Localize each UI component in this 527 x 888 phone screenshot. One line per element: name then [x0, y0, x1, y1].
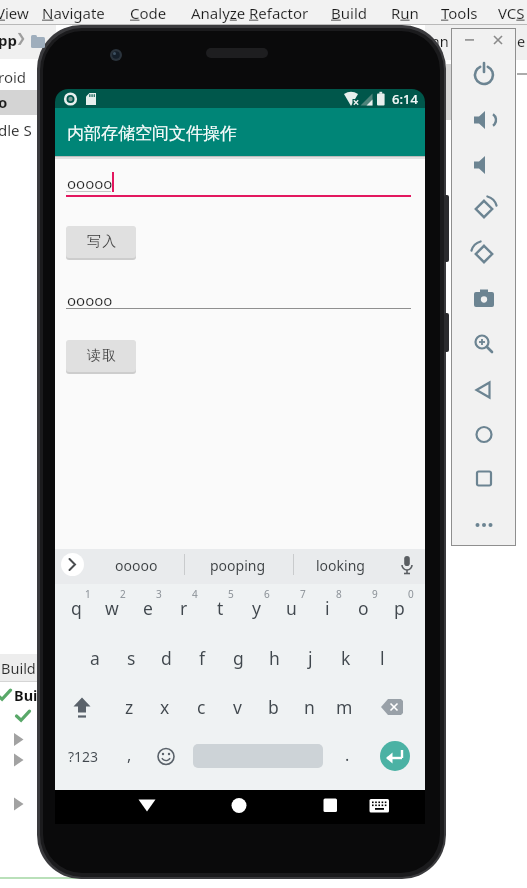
- button[interactable]: t: [130, 592, 310, 624]
- staticText: p: [394, 596, 405, 620]
- staticText: ooooo: [115, 556, 158, 575]
- staticText: Code: [130, 3, 167, 23]
- staticText: 8: [336, 587, 342, 601]
- staticText: s: [127, 646, 136, 670]
- button[interactable]: [469, 463, 499, 493]
- staticText: x: [160, 695, 170, 719]
- button[interactable]: 读取: [66, 340, 136, 372]
- button[interactable]: 写入: [66, 226, 136, 258]
- button[interactable]: Build: [331, 3, 367, 23]
- button[interactable]: q: [0, 592, 166, 624]
- staticText: l: [380, 646, 385, 670]
- staticText: q: [71, 596, 82, 620]
- staticText: t: [217, 596, 224, 620]
- button[interactable]: [489, 31, 507, 49]
- button[interactable]: [314, 790, 346, 823]
- staticText: 1: [85, 587, 91, 601]
- staticText: ooooo: [67, 173, 113, 193]
- button[interactable]: a: [5, 642, 185, 674]
- button[interactable]: Refactor: [249, 3, 309, 23]
- button[interactable]: [223, 790, 255, 823]
- button[interactable]: Tools: [441, 3, 478, 23]
- button[interactable]: ,: [39, 739, 219, 771]
- button[interactable]: p: [309, 592, 489, 624]
- button[interactable]: [363, 790, 395, 823]
- button[interactable]: l: [292, 642, 472, 674]
- button[interactable]: [469, 510, 499, 540]
- button[interactable]: g: [148, 642, 328, 674]
- button[interactable]: r: [94, 592, 274, 624]
- button[interactable]: [469, 60, 499, 90]
- button[interactable]: Code: [130, 3, 167, 23]
- button[interactable]: h: [184, 642, 364, 674]
- staticText: y: [252, 596, 261, 620]
- staticText: z: [125, 695, 134, 719]
- staticText: Refactor: [249, 3, 309, 23]
- staticText: dle S: [0, 120, 32, 140]
- button[interactable]: i: [237, 592, 417, 624]
- staticText: Analyze: [191, 3, 246, 23]
- button[interactable]: e: [58, 592, 238, 624]
- button[interactable]: [469, 420, 499, 450]
- button[interactable]: View: [0, 3, 29, 23]
- button[interactable]: [395, 552, 419, 578]
- staticText: 6: [264, 587, 270, 601]
- button[interactable]: o: [273, 592, 453, 624]
- staticText: pooping: [210, 556, 266, 575]
- button[interactable]: [469, 150, 499, 180]
- button[interactable]: j: [220, 642, 400, 674]
- button[interactable]: n: [219, 691, 399, 723]
- staticText: View: [0, 3, 29, 23]
- staticText: g: [233, 646, 244, 670]
- staticText: inn: [427, 31, 449, 51]
- button[interactable]: ?123: [0, 740, 173, 772]
- button[interactable]: [380, 741, 410, 771]
- button[interactable]: [61, 553, 84, 576]
- button[interactable]: .: [257, 739, 437, 771]
- button[interactable]: f: [112, 642, 292, 674]
- staticText: 0: [408, 587, 414, 601]
- button[interactable]: [469, 329, 499, 359]
- button[interactable]: VCS: [498, 3, 525, 23]
- button[interactable]: [152, 743, 179, 770]
- button[interactable]: [377, 693, 407, 721]
- button[interactable]: [469, 194, 499, 224]
- button[interactable]: b: [183, 691, 363, 723]
- staticText: ?123: [68, 747, 99, 766]
- staticText: 6:14: [392, 90, 418, 108]
- button[interactable]: [66, 286, 412, 314]
- button[interactable]: [66, 168, 412, 198]
- button[interactable]: [469, 239, 499, 269]
- staticText: looking: [316, 556, 365, 575]
- button[interactable]: [469, 375, 499, 405]
- staticText: Build: [1, 658, 36, 678]
- button[interactable]: y: [166, 592, 346, 624]
- staticText: Tools: [441, 3, 478, 23]
- button[interactable]: pooping: [148, 549, 328, 581]
- button[interactable]: ooooo: [46, 549, 226, 581]
- button[interactable]: looking: [250, 549, 430, 581]
- button[interactable]: s: [41, 642, 221, 674]
- button[interactable]: Analyze: [191, 3, 246, 23]
- button[interactable]: [131, 790, 163, 823]
- staticText: b: [268, 695, 279, 719]
- button[interactable]: [67, 693, 97, 721]
- button[interactable]: w: [22, 592, 202, 624]
- button[interactable]: u: [201, 592, 381, 624]
- staticText: Build: [331, 3, 367, 23]
- button[interactable]: [469, 284, 499, 314]
- button[interactable]: k: [256, 642, 436, 674]
- button[interactable]: Run: [391, 3, 419, 23]
- button[interactable]: v: [147, 691, 327, 723]
- button[interactable]: z: [39, 691, 219, 723]
- button[interactable]: [469, 105, 499, 135]
- button[interactable]: x: [75, 691, 255, 723]
- staticText: 4: [192, 587, 198, 601]
- button[interactable]: [460, 31, 478, 49]
- button[interactable]: m: [254, 691, 434, 723]
- button[interactable]: c: [111, 691, 291, 723]
- staticText: m: [336, 695, 353, 719]
- button[interactable]: d: [76, 642, 256, 674]
- button[interactable]: Navigate: [42, 3, 105, 23]
